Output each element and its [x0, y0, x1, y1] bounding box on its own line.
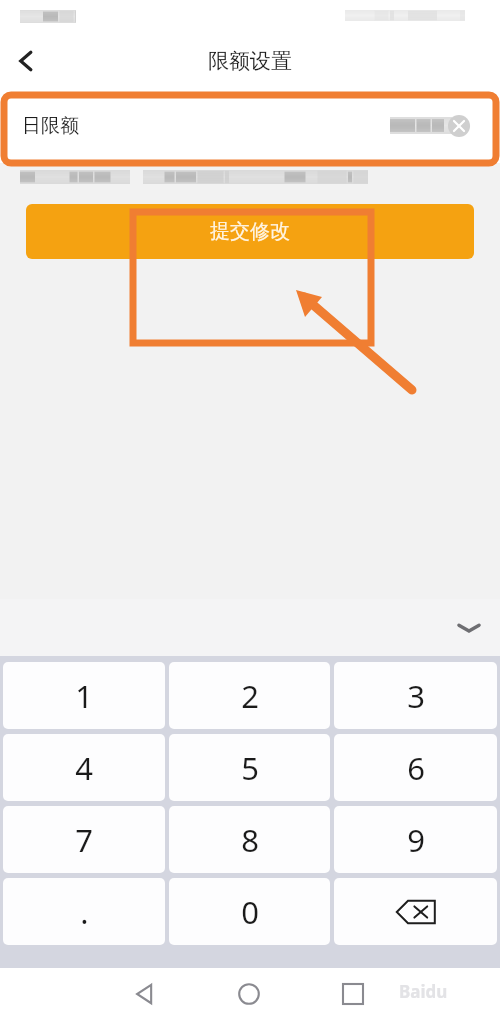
button[interactable]: Hide keyboard: [446, 605, 492, 651]
button[interactable]: 4: [3, 734, 165, 801]
button[interactable]: 1: [3, 662, 165, 729]
staticText: 8: [241, 819, 259, 861]
button[interactable]: Backspace: [334, 878, 497, 945]
button[interactable]: Back: [0, 35, 52, 87]
staticText: .: [80, 891, 89, 933]
staticText: Baidu: [399, 980, 448, 1003]
staticText: 9: [407, 819, 425, 861]
button[interactable]: 0: [169, 878, 330, 945]
button[interactable]: .: [3, 878, 165, 945]
button[interactable]: 7: [3, 806, 165, 873]
button[interactable]: 9: [334, 806, 497, 873]
staticText: 4: [75, 747, 93, 789]
button[interactable]: 6: [334, 734, 497, 801]
staticText: 0: [241, 891, 259, 933]
staticText: 6: [407, 747, 425, 789]
button[interactable]: Recents: [326, 968, 380, 1020]
staticText: 限额设置: [208, 48, 292, 74]
staticText: 3: [407, 675, 425, 717]
staticText: 1: [75, 675, 93, 717]
button[interactable]: 日限额: [0, 88, 500, 163]
staticText: 提交修改: [210, 219, 290, 244]
staticText: 7: [75, 819, 93, 861]
button[interactable]: 5: [169, 734, 330, 801]
staticText: 2: [241, 675, 259, 717]
button[interactable]: 提交修改: [26, 204, 474, 259]
button[interactable]: Clear: [444, 111, 474, 141]
button[interactable]: Back: [118, 968, 172, 1020]
button[interactable]: Home: [222, 968, 276, 1020]
staticText: 日限额: [22, 114, 79, 138]
button[interactable]: 3: [334, 662, 497, 729]
button[interactable]: 8: [169, 806, 330, 873]
staticText: 5: [241, 747, 259, 789]
button[interactable]: 2: [169, 662, 330, 729]
